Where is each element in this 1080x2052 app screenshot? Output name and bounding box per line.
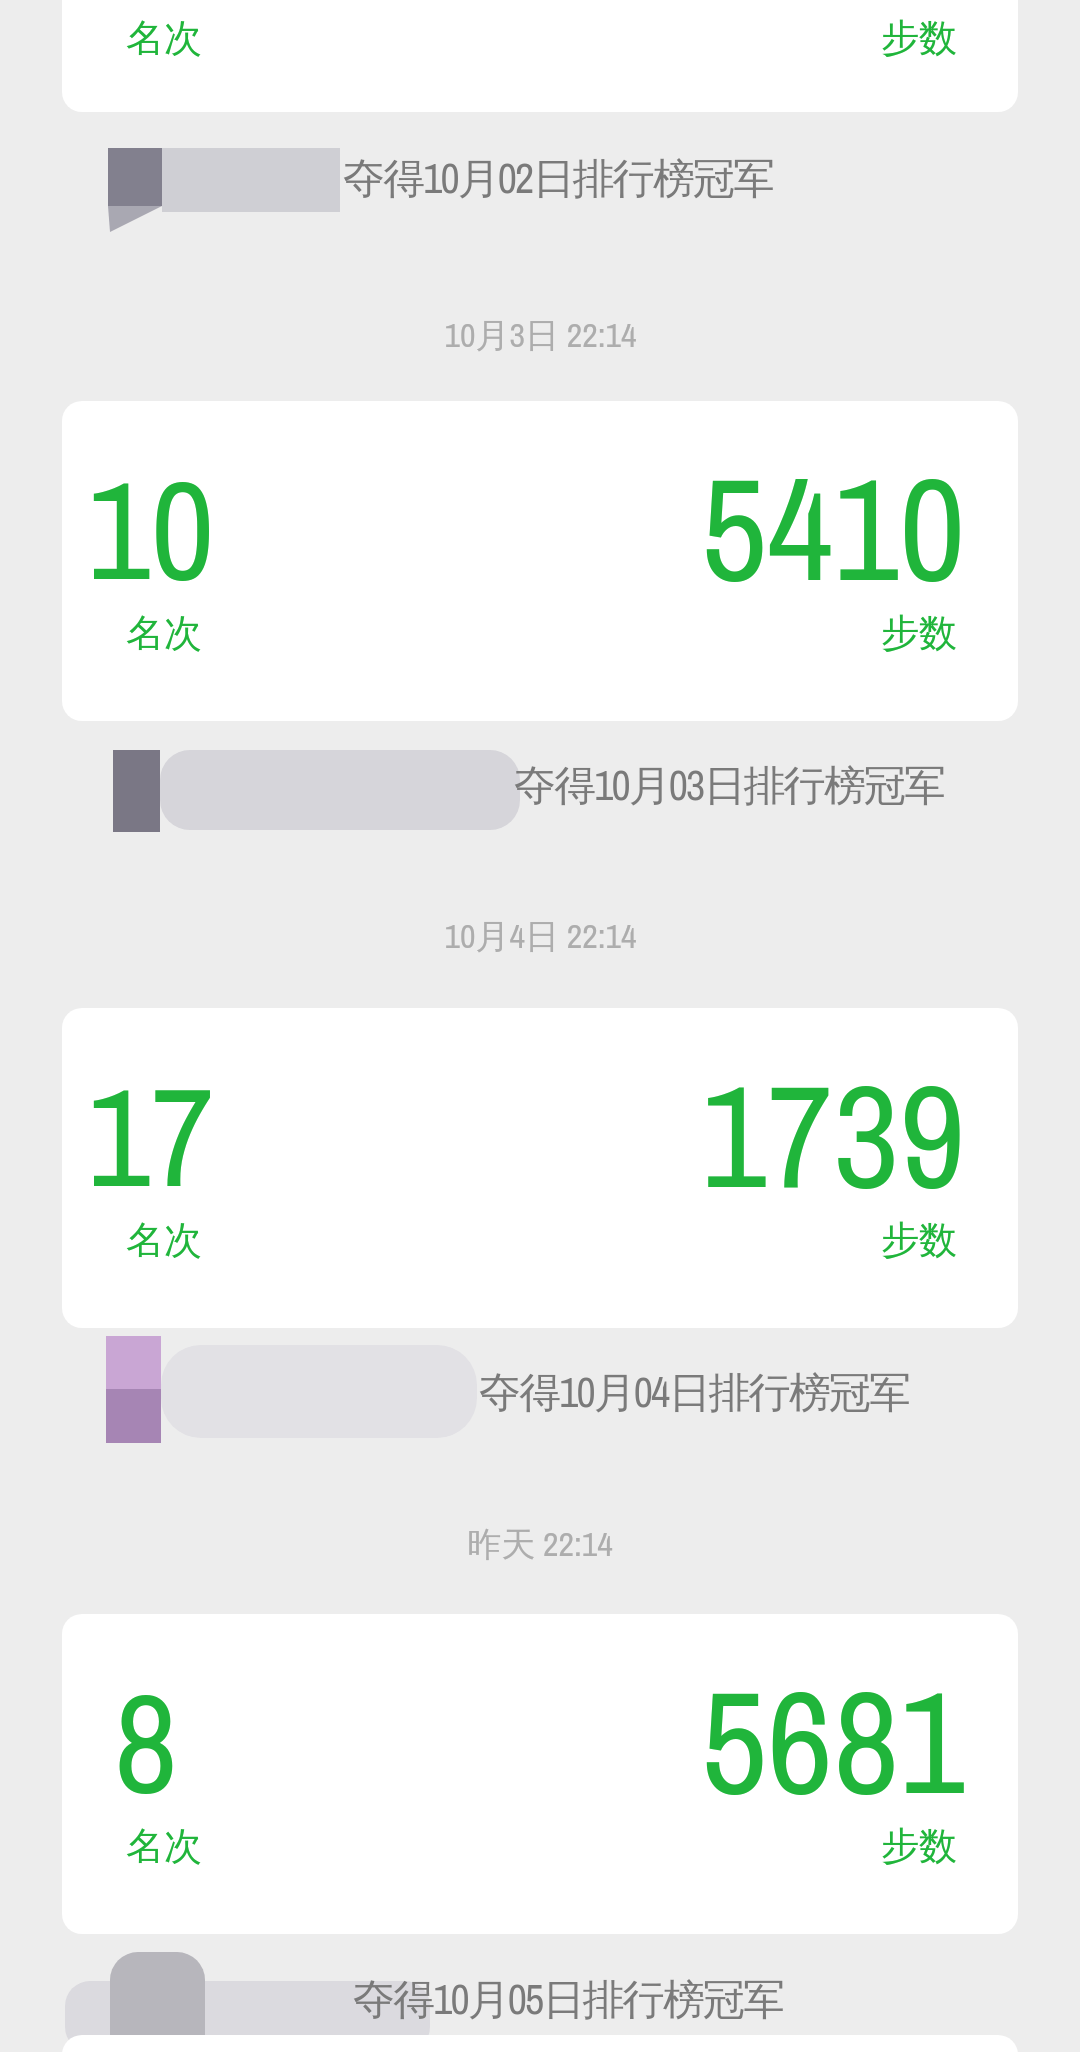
staticText: 1739	[701, 1037, 966, 1232]
staticText: 5410	[701, 430, 966, 625]
button[interactable]: 8	[62, 1614, 1018, 1934]
staticText: 名次	[126, 14, 202, 62]
staticText: 步数	[881, 1216, 957, 1264]
staticText: 夺得10月05日排行榜冠军	[353, 1971, 784, 2028]
staticText: 17	[87, 1041, 215, 1230]
staticText: 10月3日 22:14	[444, 312, 637, 358]
button[interactable]: 17	[62, 1008, 1018, 1328]
staticText: 名次	[126, 1216, 202, 1264]
staticText: 名次	[126, 609, 202, 657]
staticText: 8	[114, 1647, 178, 1836]
staticText: 步数	[881, 609, 957, 657]
staticText: 夺得10月03日排行榜冠军	[514, 757, 945, 814]
staticText: 5681	[701, 1643, 966, 1838]
staticText: 10月4日 22:14	[444, 913, 637, 959]
button[interactable]: 名次	[62, 0, 1018, 112]
staticText: 10	[87, 434, 215, 623]
staticText: 夺得10月02日排行榜冠军	[343, 150, 774, 207]
button[interactable]: 10	[62, 401, 1018, 721]
staticText: 名次	[126, 1822, 202, 1870]
staticText: 步数	[881, 14, 957, 62]
staticText: 夺得10月04日排行榜冠军	[479, 1364, 910, 1421]
staticText: 昨天 22:14	[467, 1521, 613, 1567]
staticText: 步数	[881, 1822, 957, 1870]
